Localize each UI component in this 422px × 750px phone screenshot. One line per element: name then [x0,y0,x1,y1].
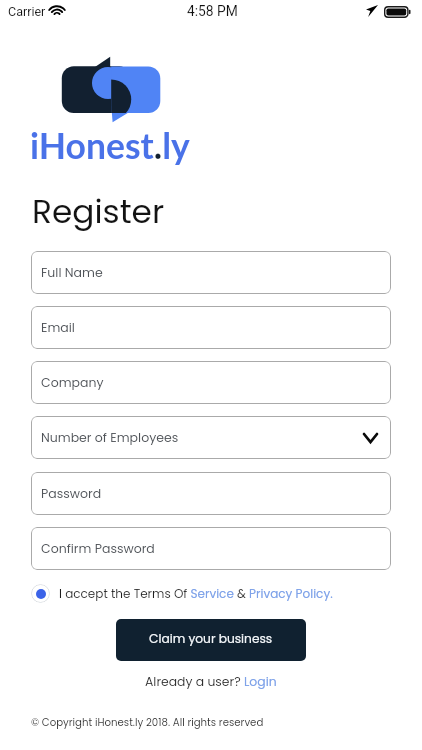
staticText: © Copyright iHonest.ly 2018. All rights … [31,715,264,729]
button[interactable]: Login [244,673,277,690]
staticText: iHonest.ly [30,124,190,167]
button[interactable]: Confirm Password [31,527,391,570]
button[interactable]: Email [31,306,391,349]
staticText: Confirm Password [41,540,155,557]
staticText: Login [244,673,277,690]
staticText: Register [32,189,165,235]
button[interactable]: Password [31,472,391,515]
staticText: Email [41,319,75,336]
staticText: 4:58 PM [187,3,238,19]
button[interactable]: Company [31,361,391,404]
staticText: Claim your business [149,630,273,647]
button[interactable]: Full Name [31,251,391,294]
staticText: Already a user? [145,673,244,690]
button[interactable]: Number of Employees [31,416,391,459]
staticText: I accept the Terms Of Service & Privacy … [59,585,333,602]
button[interactable]: I accept the terms [31,584,50,603]
staticText: Full Name [41,264,103,281]
staticText: Number of Employees [41,429,179,446]
staticText: Company [41,374,104,391]
staticText: Password [41,485,102,502]
staticText: Carrier [8,4,46,19]
button[interactable]: Claim your business [116,619,306,661]
